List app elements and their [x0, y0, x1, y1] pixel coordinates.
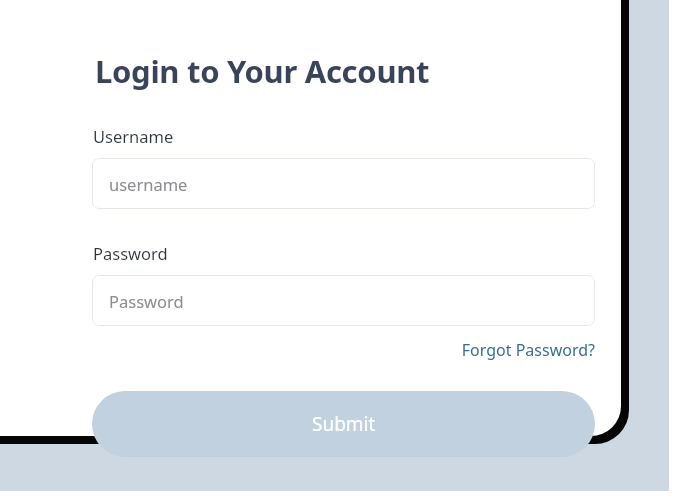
staticText: Submit [312, 411, 376, 437]
staticText: Password [109, 290, 184, 312]
button[interactable]: Password input field [92, 275, 595, 326]
button[interactable]: Forgot Password? [405, 337, 595, 362]
staticText: username [109, 173, 188, 195]
staticText: Password [93, 242, 168, 264]
button[interactable]: Submit [92, 391, 595, 457]
staticText: Forgot Password? [461, 339, 595, 361]
button[interactable]: Username input field [92, 158, 595, 209]
staticText: Login to Your Account [95, 50, 430, 92]
staticText: Username [93, 125, 174, 147]
